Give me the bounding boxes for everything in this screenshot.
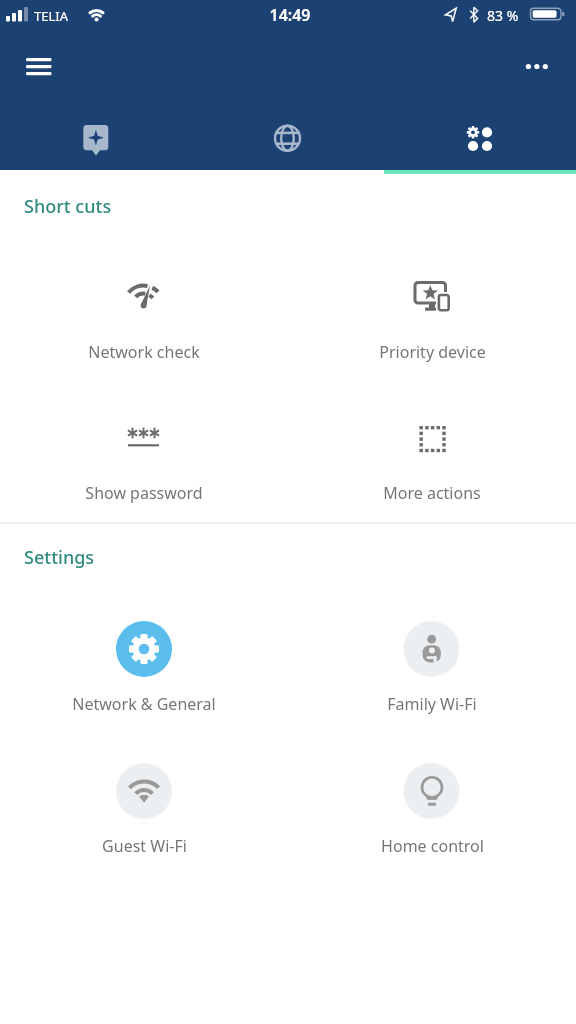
staticText: More actions <box>383 482 481 504</box>
button[interactable] <box>192 104 384 174</box>
button[interactable] <box>0 610 288 726</box>
button[interactable] <box>288 252 576 376</box>
staticText: Guest Wi-Fi <box>102 835 187 857</box>
staticText: 83 % <box>487 6 519 25</box>
button[interactable] <box>288 396 576 512</box>
staticText: 14:49 <box>269 4 311 26</box>
button[interactable] <box>288 752 576 868</box>
staticText: Short cuts <box>24 194 112 219</box>
button[interactable] <box>0 752 288 868</box>
button[interactable] <box>0 104 192 174</box>
button[interactable] <box>384 104 576 174</box>
staticText: Settings <box>24 545 95 570</box>
staticText: Family Wi-Fi <box>387 693 477 715</box>
button[interactable] <box>18 49 60 85</box>
staticText: TELIA <box>34 7 68 25</box>
staticText: Network check <box>88 341 200 363</box>
staticText: Home control <box>381 835 484 857</box>
staticText: Priority device <box>379 341 486 363</box>
button[interactable] <box>0 252 288 376</box>
button[interactable] <box>516 52 560 82</box>
staticText: Show password <box>85 482 203 504</box>
staticText: Network & General <box>72 693 216 715</box>
button[interactable] <box>288 610 576 726</box>
button[interactable] <box>0 396 288 512</box>
